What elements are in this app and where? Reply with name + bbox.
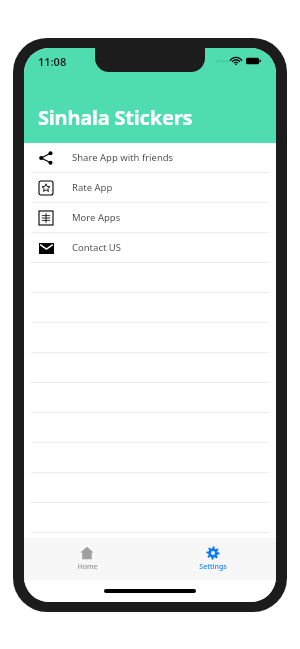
staticText: More Apps [72, 211, 121, 224]
other: Rate App [39, 181, 53, 195]
staticText: Sinhala Stickers [38, 104, 193, 131]
staticText: Share App with friends [72, 151, 174, 164]
button[interactable]: Settings [150, 538, 276, 580]
staticText: Home [77, 562, 98, 572]
staticText: Contact US [72, 241, 122, 254]
other: More Apps [39, 211, 53, 225]
button[interactable]: Rate App [24, 173, 276, 203]
other: Home [80, 546, 94, 560]
staticText: 11:08 [38, 54, 67, 69]
other: Contact US [39, 243, 54, 254]
button[interactable]: Share [24, 143, 276, 173]
button[interactable]: Home [24, 538, 150, 580]
button[interactable]: Contact US [24, 233, 276, 263]
other: Share [39, 151, 53, 165]
staticText: Rate App [72, 181, 113, 194]
other: Settings [206, 546, 220, 560]
staticText: Settings [199, 562, 227, 572]
button[interactable]: More Apps [24, 203, 276, 233]
